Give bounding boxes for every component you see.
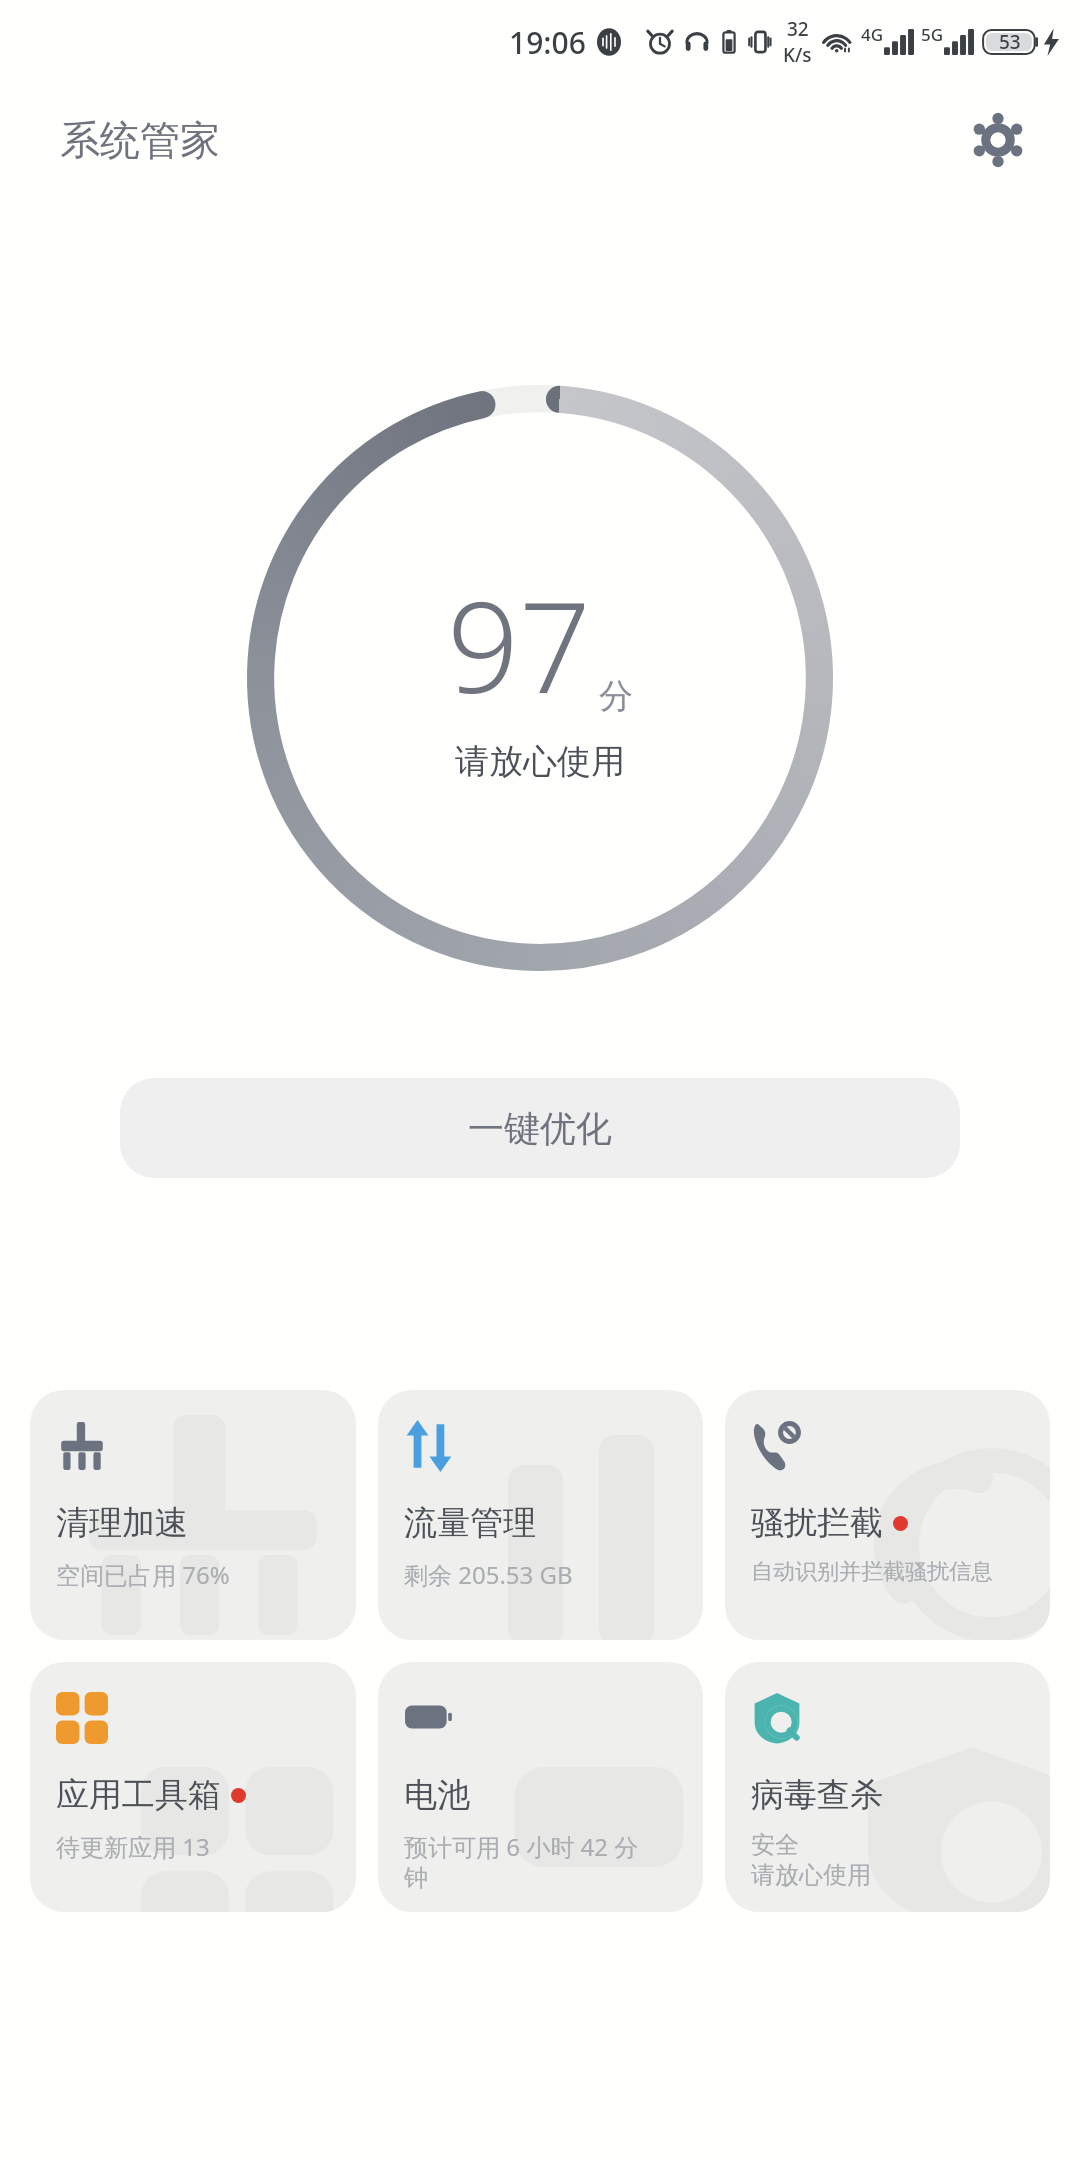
staticText: 分 [599, 675, 633, 718]
staticText: 32 [787, 16, 809, 42]
staticText: 剩余 205.53 GB [404, 1558, 573, 1591]
staticText: 19:06 [509, 22, 586, 63]
button[interactable]: 一键优化 [120, 1078, 960, 1178]
staticText: 请放心使用 [751, 1860, 871, 1890]
staticText: 预计可用 6 小时 42 分 [404, 1830, 639, 1863]
staticText: 待更新应用 13 [56, 1830, 210, 1863]
button[interactable]: 流量管理 [378, 1390, 703, 1640]
staticText: 请放心使用 [455, 740, 625, 783]
staticText: 空间已占用 76% [56, 1558, 230, 1591]
staticText: 电池 [404, 1774, 470, 1816]
staticText: 病毒查杀 [751, 1774, 883, 1816]
staticText: 骚扰拦截 [751, 1502, 883, 1544]
staticText: 4G [861, 23, 884, 46]
staticText: 系统管家 [60, 115, 220, 165]
button[interactable]: Settings [966, 108, 1030, 172]
staticText: 清理加速 [56, 1502, 188, 1544]
staticText: 一键优化 [468, 1106, 612, 1151]
staticText: 53 [999, 29, 1021, 55]
staticText: K/s [783, 42, 812, 68]
button[interactable]: 电池 [378, 1662, 703, 1912]
button[interactable]: 清理加速 [30, 1390, 356, 1640]
button[interactable]: 应用工具箱 [30, 1662, 356, 1912]
button[interactable]: 骚扰拦截 [725, 1390, 1050, 1640]
staticText: 自动识别并拦截骚扰信息 [751, 1558, 993, 1586]
staticText: 应用工具箱 [56, 1774, 221, 1816]
staticText: 流量管理 [404, 1502, 536, 1544]
staticText: 5G [921, 23, 944, 46]
button[interactable]: 病毒查杀 [725, 1662, 1050, 1912]
staticText: 钟 [404, 1863, 428, 1893]
staticText: 安全 [751, 1830, 799, 1860]
staticText: 97 [447, 558, 591, 730]
